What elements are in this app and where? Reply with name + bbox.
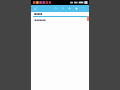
button[interactable]: Undo (53, 6, 58, 11)
button[interactable]: Done (33, 6, 38, 11)
button[interactable]: Delete (74, 6, 79, 11)
button[interactable] (31, 13, 89, 17)
button[interactable]: More options (81, 6, 86, 11)
button[interactable] (31, 19, 89, 22)
button[interactable]: Add (67, 6, 72, 11)
button[interactable]: Redo (60, 6, 65, 11)
